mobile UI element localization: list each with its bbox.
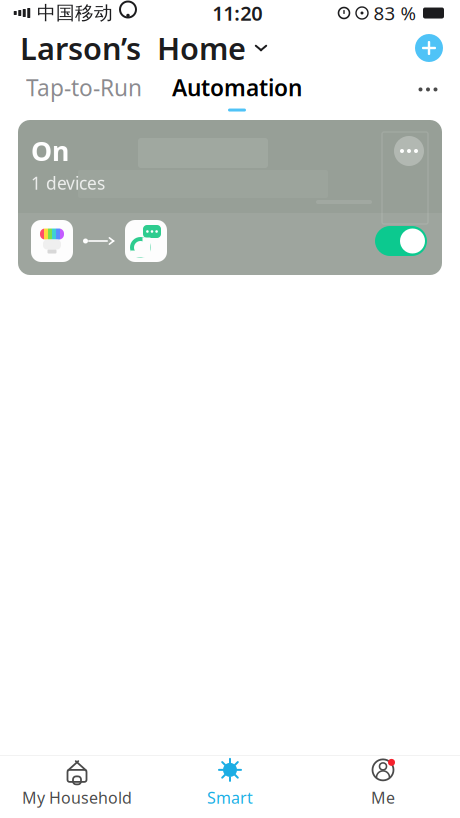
staticText: Larson’s Home — [20, 28, 246, 68]
button[interactable]: More options — [408, 72, 448, 106]
button[interactable]: Me — [306, 756, 459, 810]
staticText: 1 devices — [31, 171, 105, 194]
staticText: Automation — [172, 72, 302, 102]
button[interactable]: Larson’s Home — [20, 22, 269, 74]
staticText: My Household — [22, 787, 132, 808]
staticText: Me — [371, 787, 395, 808]
button[interactable]: On — [18, 120, 442, 275]
staticText: 中国移动 — [37, 1, 113, 24]
button[interactable]: Automation options — [389, 133, 429, 169]
staticText: Tap-to-Run — [26, 72, 142, 102]
button[interactable]: Automation enabled — [373, 221, 429, 261]
staticText: Smart — [207, 787, 253, 808]
button[interactable]: Smart — [153, 756, 306, 810]
button[interactable]: Tap-to-Run — [22, 72, 146, 111]
button[interactable]: Add — [409, 28, 449, 68]
button[interactable]: My Household — [0, 756, 153, 810]
staticText: 83 % — [373, 1, 416, 25]
button[interactable]: Automation — [168, 72, 306, 111]
staticText: 11:20 — [212, 0, 262, 26]
staticText: On — [31, 133, 69, 168]
